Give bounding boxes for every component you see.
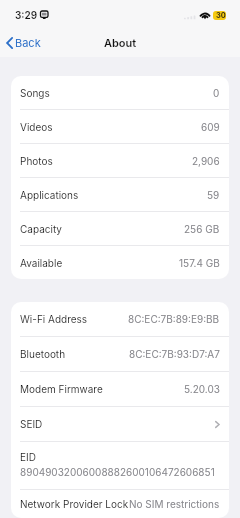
staticText: 8C:EC:7B:89:E9:BB bbox=[128, 313, 220, 325]
staticText: Capacity bbox=[20, 223, 62, 235]
staticText: Available bbox=[20, 257, 63, 269]
staticText: 157.4 GB bbox=[179, 257, 220, 269]
staticText: 2,906 bbox=[192, 155, 220, 167]
staticText: Network Provider Lock bbox=[20, 498, 129, 510]
button[interactable]: EID bbox=[11, 442, 229, 490]
staticText: 89049032006008882600106472606851 bbox=[20, 466, 215, 478]
staticText: 30 bbox=[216, 11, 226, 20]
staticText: 59 bbox=[207, 189, 220, 201]
button[interactable]: Videos bbox=[11, 110, 229, 144]
staticText: Applications bbox=[20, 189, 79, 201]
button[interactable]: Bluetooth bbox=[11, 337, 229, 372]
staticText: EID bbox=[20, 451, 36, 463]
button[interactable]: Modem Firmware bbox=[11, 372, 229, 407]
staticText: Photos bbox=[20, 155, 53, 167]
button[interactable]: Back bbox=[5, 33, 42, 52]
staticText: Modem Firmware bbox=[20, 383, 103, 395]
button[interactable]: Capacity bbox=[11, 212, 229, 246]
staticText: About bbox=[104, 36, 137, 49]
staticText: 8C:EC:7B:93:D7:A7 bbox=[129, 348, 220, 360]
staticText: No SIM restrictions bbox=[129, 498, 220, 510]
staticText: Wi-Fi Address bbox=[20, 313, 88, 325]
button[interactable]: Songs bbox=[11, 76, 229, 110]
button[interactable]: Wi-Fi Address bbox=[11, 302, 229, 337]
staticText: Songs bbox=[20, 87, 50, 99]
staticText: Bluetooth bbox=[20, 348, 66, 360]
button[interactable]: Network Provider Lock bbox=[11, 490, 229, 518]
button[interactable]: Applications bbox=[11, 178, 229, 212]
button[interactable]: Photos bbox=[11, 144, 229, 178]
button[interactable]: SEID bbox=[11, 407, 229, 442]
staticText: Videos bbox=[20, 121, 53, 133]
staticText: 3:29 bbox=[15, 9, 38, 21]
staticText: SEID bbox=[20, 418, 43, 430]
button[interactable]: Available bbox=[11, 246, 229, 279]
staticText: Back bbox=[15, 36, 41, 49]
staticText: 5.20.03 bbox=[184, 383, 220, 395]
staticText: 256 GB bbox=[184, 223, 220, 235]
staticText: 0 bbox=[213, 87, 220, 99]
staticText: 609 bbox=[201, 121, 220, 133]
